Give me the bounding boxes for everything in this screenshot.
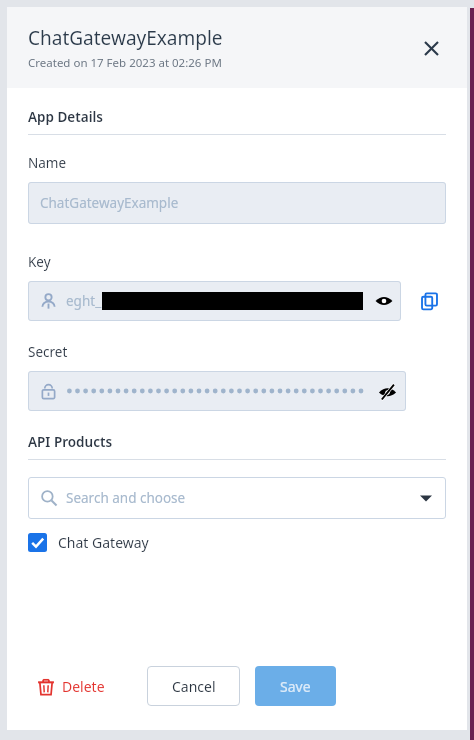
button[interactable]: eght_ (28, 281, 401, 321)
button[interactable]: Delete (37, 677, 105, 696)
button[interactable]: Show key (367, 284, 401, 318)
staticText: Save (280, 677, 311, 696)
staticText: Delete (62, 677, 105, 696)
staticText: ChatGatewayExample (28, 25, 223, 51)
staticText: API Products (28, 433, 113, 451)
button[interactable]: Save (255, 666, 336, 706)
staticText: Name (28, 154, 67, 172)
staticText: App Details (28, 108, 103, 126)
button[interactable]: Copy key (414, 286, 444, 316)
staticText: Cancel (172, 677, 216, 696)
staticText: Created on 17 Feb 2023 at 02:26 PM (28, 55, 222, 71)
staticText: ChatGatewayExample (40, 194, 179, 212)
button[interactable]: Hide secret (28, 371, 406, 411)
button[interactable]: ChatGatewayExample (28, 182, 446, 224)
button[interactable]: Hide secret (370, 374, 404, 408)
staticText: Search and choose (66, 489, 420, 507)
staticText: eght_ (66, 292, 102, 310)
button[interactable]: Chat Gateway (28, 533, 149, 552)
staticText: Secret (28, 343, 68, 361)
button[interactable]: Close (417, 34, 445, 62)
button[interactable]: Cancel (147, 666, 240, 706)
staticText: Chat Gateway (58, 533, 149, 552)
button[interactable]: Search and choose (28, 477, 446, 519)
staticText: Key (28, 253, 51, 271)
